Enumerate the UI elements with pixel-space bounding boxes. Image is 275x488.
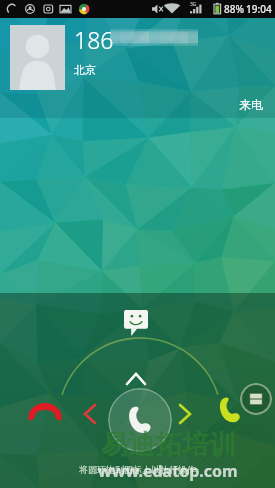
staticText: 将圆环拖到图标上以执行操作 xyxy=(0,464,275,475)
staticText: 来电 xyxy=(239,97,263,112)
staticText: 19:04 xyxy=(246,2,272,16)
button[interactable]: Decline call xyxy=(28,398,62,422)
staticText: 3G xyxy=(190,1,197,8)
staticText: 88% xyxy=(224,2,244,16)
staticText: www.edatop.com xyxy=(98,460,238,482)
staticText: 易迪拓培训 xyxy=(101,428,236,462)
button[interactable]: Quick response xyxy=(240,383,272,415)
staticText: 186 xyxy=(74,24,114,55)
button[interactable]: Answer call xyxy=(218,396,242,424)
button[interactable]: Reply with message xyxy=(124,310,148,336)
staticText: 北京 xyxy=(74,63,96,77)
button[interactable]: Call xyxy=(108,388,172,452)
